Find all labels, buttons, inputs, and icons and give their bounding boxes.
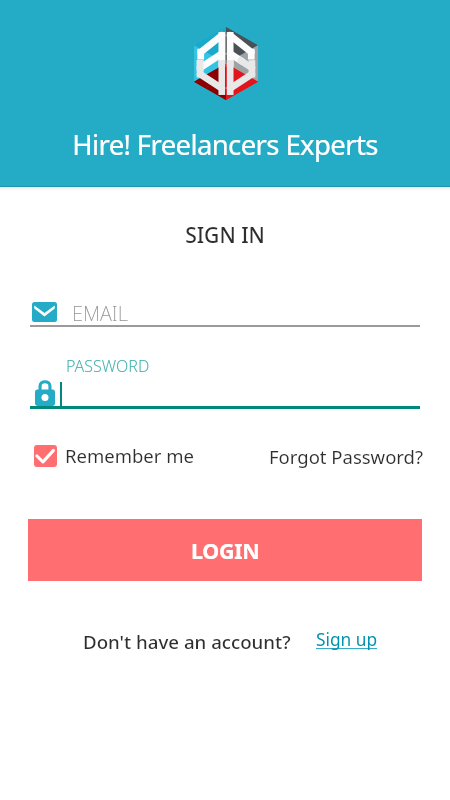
button[interactable]: Forgot Password? <box>269 444 424 469</box>
staticText: Hire! Freelancers Experts <box>0 126 450 163</box>
staticText: SIGN IN <box>0 221 450 250</box>
button[interactable]: Sign up <box>316 628 378 652</box>
staticText: PASSWORD <box>66 355 150 377</box>
staticText: Don't have an account? <box>83 629 291 654</box>
button[interactable]: Remember me <box>34 443 194 468</box>
other: Email <box>32 302 57 322</box>
other: Password <box>35 380 55 406</box>
staticText: EMAIL <box>72 300 128 327</box>
button[interactable]: LOGIN <box>28 519 422 581</box>
staticText: LOGIN <box>191 536 260 565</box>
staticText: Remember me <box>65 443 194 468</box>
